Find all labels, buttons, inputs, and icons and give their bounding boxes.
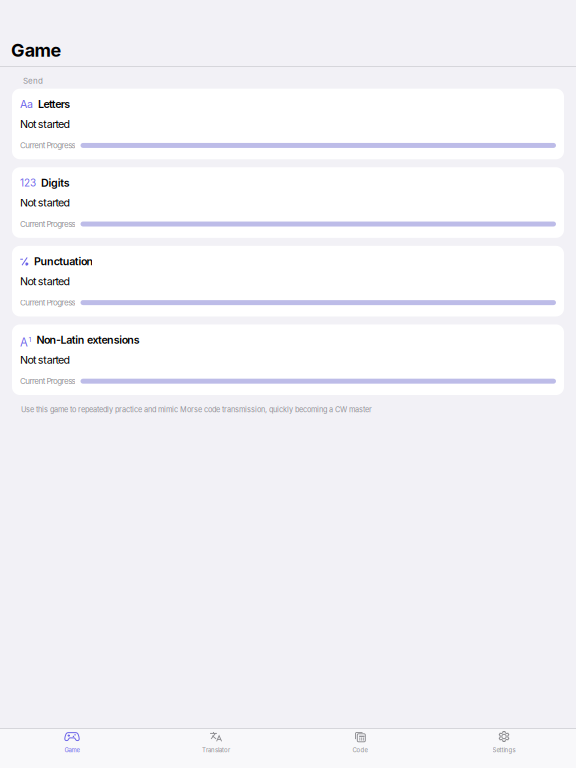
staticText: Not started xyxy=(20,353,70,366)
button[interactable]: Punctuation xyxy=(12,246,564,316)
staticText: Translator xyxy=(202,746,230,754)
staticText: Current Progress xyxy=(20,219,75,229)
staticText: Non-Latin extensions xyxy=(36,333,140,346)
staticText: Letters xyxy=(38,98,70,111)
button[interactable]: Code xyxy=(288,728,432,768)
staticText: 1 xyxy=(28,335,31,343)
staticText: Not started xyxy=(20,118,70,131)
staticText: Digits xyxy=(41,176,70,189)
staticText: Settings xyxy=(492,746,515,754)
staticText: Aa xyxy=(20,98,33,111)
button[interactable]: Translator xyxy=(144,728,288,768)
staticText: Game xyxy=(64,746,79,754)
button[interactable]: Game xyxy=(0,728,144,768)
button[interactable]: Settings xyxy=(432,728,576,768)
staticText: Code xyxy=(352,746,367,754)
button[interactable]: Aa xyxy=(12,89,564,159)
staticText: 123 xyxy=(20,177,36,189)
button[interactable]: A xyxy=(12,324,564,395)
staticText: Current Progress xyxy=(20,298,75,307)
staticText: Current Progress xyxy=(20,376,75,386)
button[interactable]: 123 xyxy=(12,167,564,238)
staticText: Not started xyxy=(20,196,70,209)
staticText: Punctuation xyxy=(34,255,93,268)
staticText: Current Progress xyxy=(20,141,75,150)
staticText: A xyxy=(20,335,28,349)
staticText: Use this game to repeatedly practice and… xyxy=(21,405,372,414)
staticText: Game xyxy=(11,39,61,61)
staticText: Not started xyxy=(20,275,70,288)
staticText: Send xyxy=(23,76,43,86)
